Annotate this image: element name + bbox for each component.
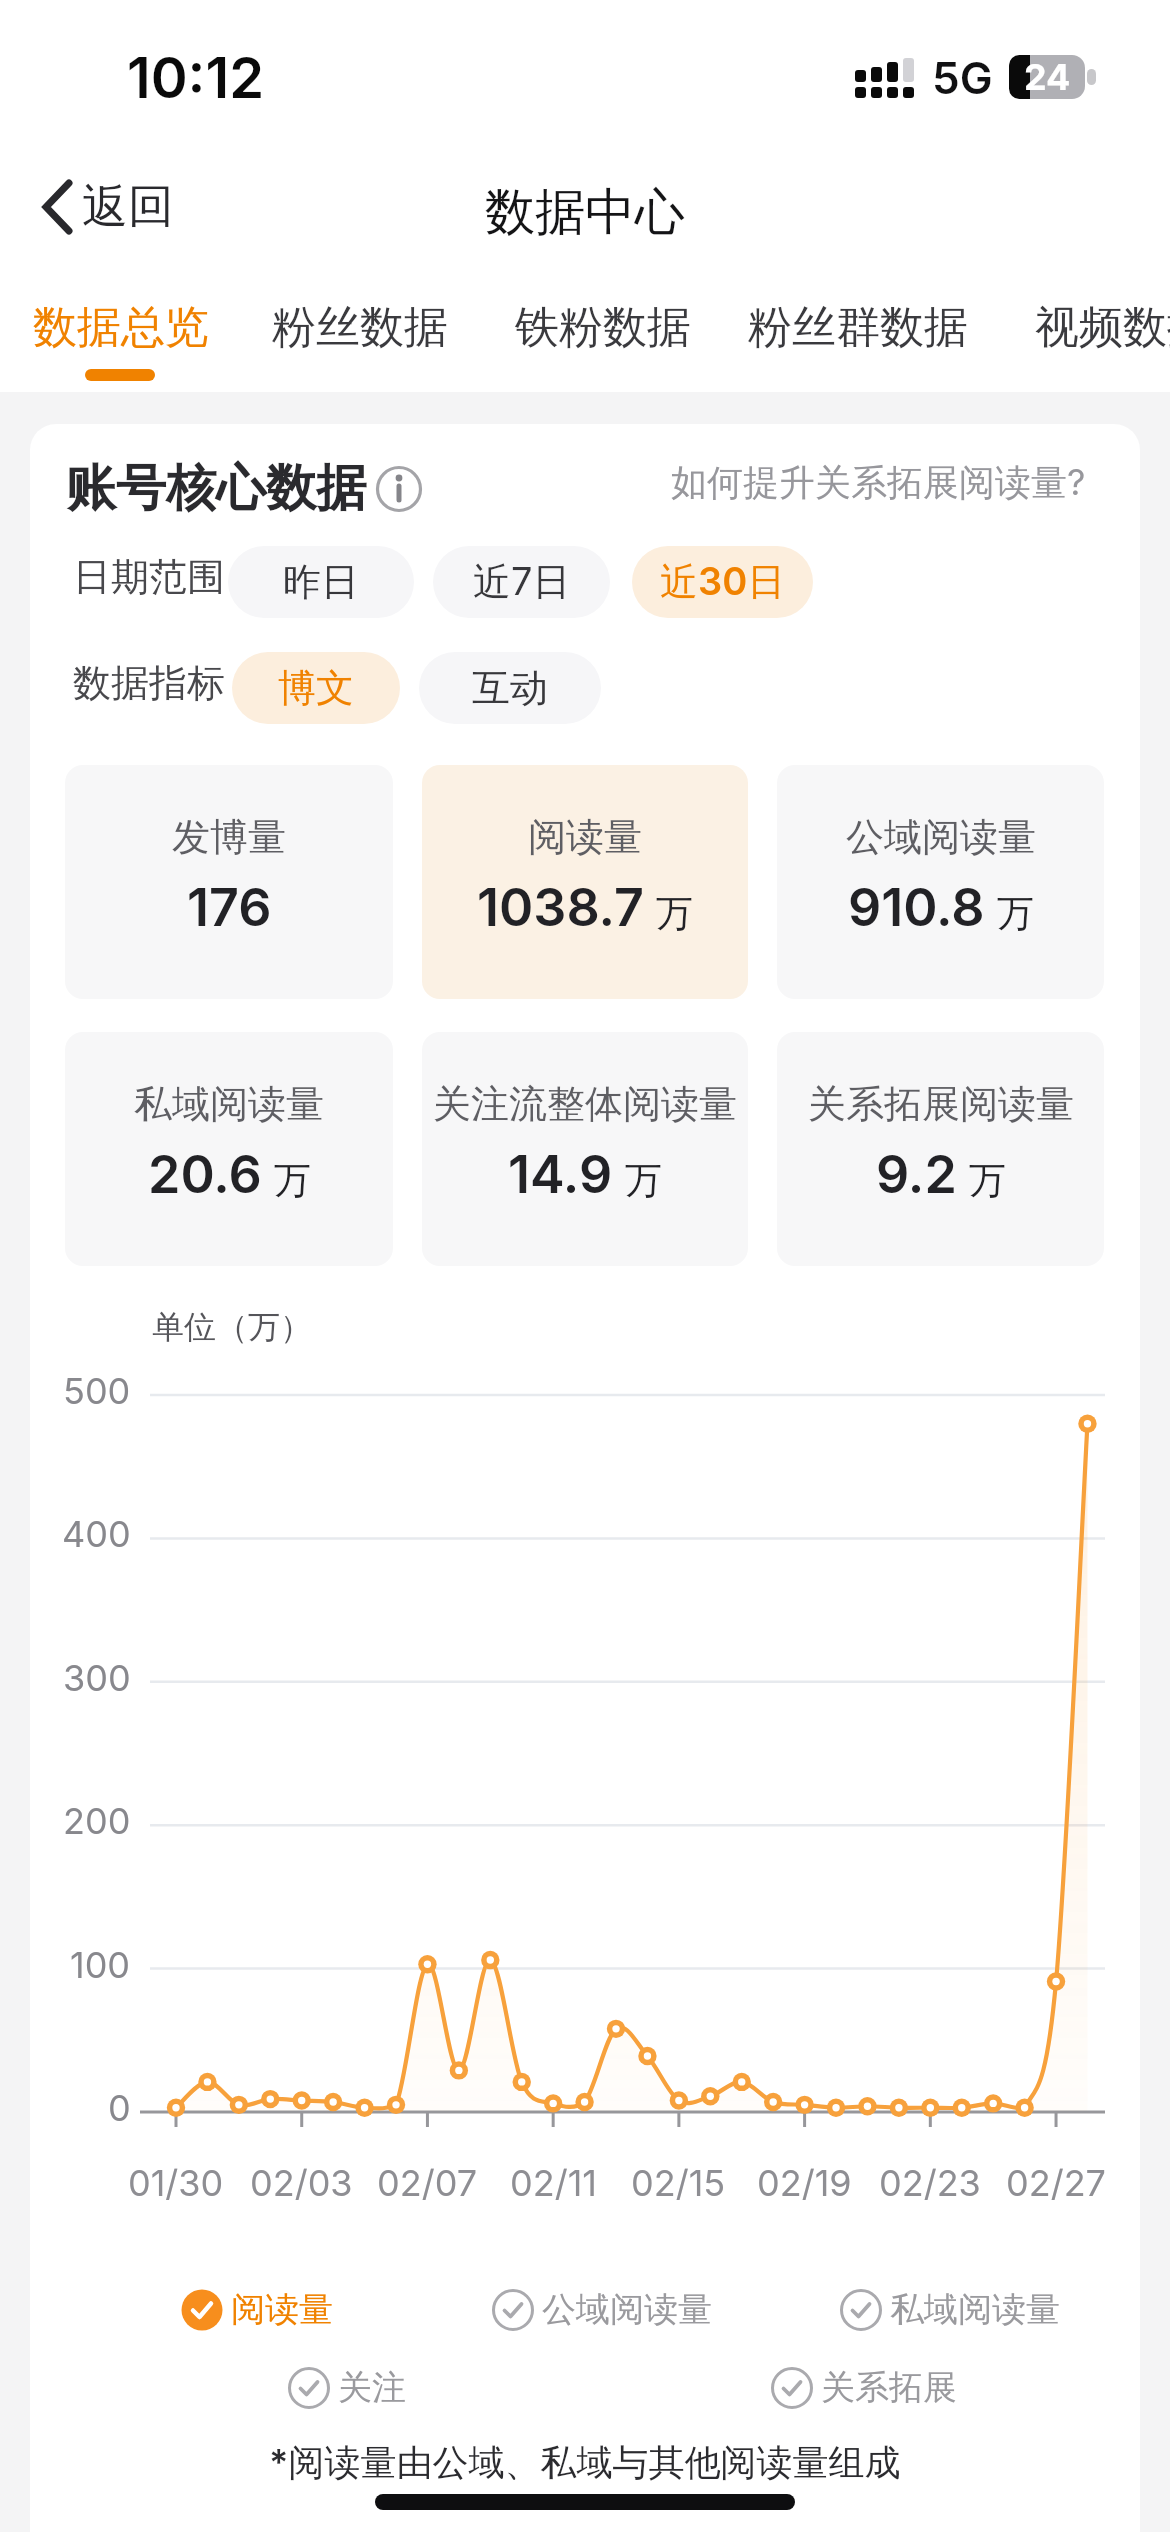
staticText: 1038.7 bbox=[477, 876, 644, 939]
button[interactable]: 返回 bbox=[40, 178, 174, 236]
staticText: 02/19 bbox=[757, 2161, 852, 2205]
staticText: 公域阅读量 bbox=[542, 2288, 712, 2331]
button[interactable]: 阅读量 bbox=[422, 765, 748, 999]
button[interactable]: 近30日 bbox=[632, 546, 813, 618]
button[interactable]: 关注 bbox=[288, 2366, 406, 2409]
staticText: 300 bbox=[63, 1656, 131, 1700]
staticText: 粉丝数据 bbox=[272, 300, 448, 355]
button[interactable]: 关系拓展阅读量 bbox=[777, 1032, 1104, 1266]
staticText: 5G bbox=[932, 51, 993, 104]
staticText: 近7日 bbox=[473, 558, 571, 606]
staticText: 视频数据 bbox=[1035, 300, 1170, 355]
staticText: 176 bbox=[187, 876, 272, 939]
staticText: 数据总览 bbox=[33, 300, 209, 355]
staticText: 万 bbox=[656, 890, 693, 937]
staticText: 私域阅读量 bbox=[134, 1080, 324, 1128]
staticText: 500 bbox=[63, 1369, 131, 1413]
staticText: 昨日 bbox=[283, 558, 359, 606]
button[interactable]: 粉丝数据 bbox=[272, 300, 448, 355]
button[interactable]: 公域阅读量 bbox=[777, 765, 1104, 999]
button[interactable]: 互动 bbox=[419, 652, 601, 724]
staticText: 数据中心 bbox=[485, 181, 685, 244]
staticText: 万 bbox=[274, 1157, 311, 1204]
staticText: 910.8 bbox=[848, 876, 985, 939]
staticText: 02/27 bbox=[1006, 2161, 1106, 2205]
staticText: 近30日 bbox=[660, 558, 786, 606]
staticText: 数据指标 bbox=[73, 659, 225, 707]
staticText: 关注流整体阅读量 bbox=[433, 1080, 737, 1128]
staticText: 02/23 bbox=[879, 2161, 981, 2205]
staticText: 14.9 bbox=[508, 1143, 613, 1206]
staticText: 返回 bbox=[82, 178, 174, 236]
button[interactable]: 昨日 bbox=[228, 546, 414, 618]
staticText: 关注 bbox=[338, 2366, 406, 2409]
button[interactable]: 私域阅读量 bbox=[65, 1032, 393, 1266]
button[interactable]: 阅读量 bbox=[181, 2288, 333, 2331]
staticText: 互动 bbox=[472, 664, 548, 712]
staticText: 24 bbox=[1024, 55, 1071, 99]
button[interactable]: 铁粉数据 bbox=[515, 300, 691, 355]
staticText: 9.2 bbox=[876, 1143, 957, 1206]
staticText: 02/15 bbox=[631, 2161, 726, 2205]
staticText: 万 bbox=[997, 890, 1034, 937]
staticText: 阅读量 bbox=[528, 813, 642, 861]
staticText: 02/07 bbox=[377, 2161, 478, 2205]
staticText: 阅读量 bbox=[231, 2288, 333, 2331]
staticText: 发博量 bbox=[172, 813, 286, 861]
staticText: 粉丝群数据 bbox=[748, 300, 968, 355]
staticText: 私域阅读量 bbox=[890, 2288, 1060, 2331]
staticText: 如何提升关系拓展阅读量? bbox=[671, 460, 1086, 506]
staticText: 02/11 bbox=[510, 2161, 597, 2205]
staticText: 10:12 bbox=[127, 44, 265, 112]
button[interactable]: 近7日 bbox=[433, 546, 610, 618]
staticText: 铁粉数据 bbox=[515, 300, 691, 355]
staticText: 关系拓展 bbox=[821, 2366, 957, 2409]
staticText: 日期范围 bbox=[73, 553, 225, 601]
staticText: 100 bbox=[70, 1943, 131, 1987]
staticText: 0 bbox=[108, 2086, 131, 2130]
staticText: 01/30 bbox=[128, 2161, 224, 2205]
button[interactable]: 关注流整体阅读量 bbox=[422, 1032, 748, 1266]
button[interactable]: 如何提升关系拓展阅读量? bbox=[600, 460, 1086, 506]
staticText: *阅读量由公域、私域与其他阅读量组成 bbox=[269, 2440, 901, 2486]
staticText: 公域阅读量 bbox=[846, 813, 1036, 861]
staticText: 万 bbox=[969, 1157, 1006, 1204]
button[interactable]: 博文 bbox=[232, 652, 400, 724]
staticText: 200 bbox=[63, 1799, 131, 1843]
staticText: 400 bbox=[62, 1512, 131, 1556]
staticText: 博文 bbox=[278, 664, 354, 712]
button[interactable]: 公域阅读量 bbox=[492, 2288, 712, 2331]
staticText: 万 bbox=[625, 1157, 662, 1204]
button[interactable]: 关系拓展 bbox=[771, 2366, 957, 2409]
staticText: 20.6 bbox=[148, 1143, 262, 1206]
button[interactable]: 粉丝群数据 bbox=[748, 300, 968, 355]
staticText: 账号核心数据 bbox=[66, 457, 366, 520]
button[interactable]: 私域阅读量 bbox=[840, 2288, 1060, 2331]
staticText: 02/03 bbox=[250, 2161, 353, 2205]
button[interactable]: 数据总览 bbox=[33, 300, 209, 355]
button[interactable]: 发博量 bbox=[65, 765, 393, 999]
staticText: 单位（万） bbox=[152, 1307, 312, 1347]
staticText: 关系拓展阅读量 bbox=[808, 1080, 1074, 1128]
button[interactable]: 视频数据 bbox=[1035, 300, 1170, 355]
